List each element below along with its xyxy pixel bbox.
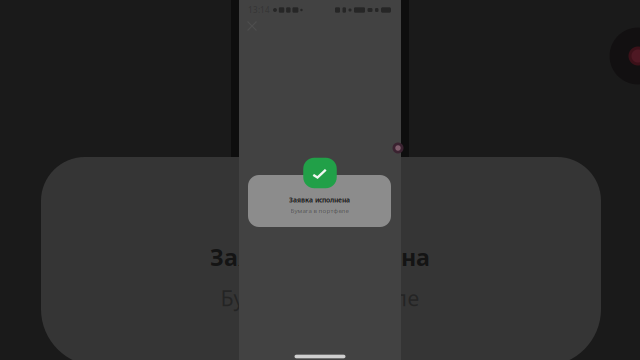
staticText: Бумага в портфеле [220, 283, 419, 313]
staticText: Бумага в портфеле [290, 206, 348, 215]
staticText: 13:14 [248, 5, 270, 15]
staticText: Заявка исполнена [289, 195, 350, 205]
staticText: Заявка исполнена [210, 241, 430, 273]
